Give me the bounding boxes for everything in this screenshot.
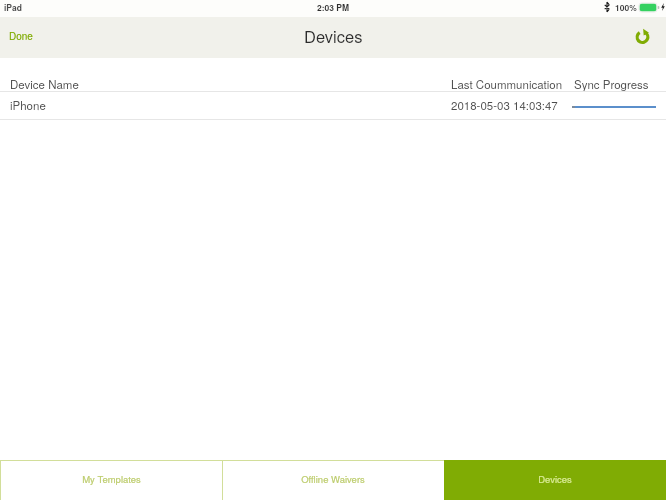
staticText: My Templates (82, 472, 141, 486)
button[interactable]: Devices (444, 460, 666, 500)
staticText: Done (9, 29, 33, 43)
staticText: Device Name (10, 76, 79, 92)
button[interactable]: Offline Waivers (222, 460, 444, 500)
button[interactable]: Done (0, 19, 42, 53)
staticText: 2018-05-03 14:03:47 (451, 97, 558, 113)
staticText: Sync Progress (574, 76, 649, 92)
staticText: 2:03 PM (317, 1, 350, 13)
button[interactable]: iPhone (0, 92, 666, 119)
button[interactable]: Refresh (619, 20, 666, 55)
staticText: iPad (4, 1, 22, 13)
button[interactable]: My Templates (0, 460, 222, 500)
staticText: 100% (615, 1, 637, 13)
staticText: iPhone (10, 97, 46, 113)
staticText: Last Coummunication (451, 76, 563, 92)
staticText: Devices (304, 24, 363, 48)
staticText: Offline Waivers (301, 472, 365, 486)
staticText: Devices (538, 472, 572, 486)
